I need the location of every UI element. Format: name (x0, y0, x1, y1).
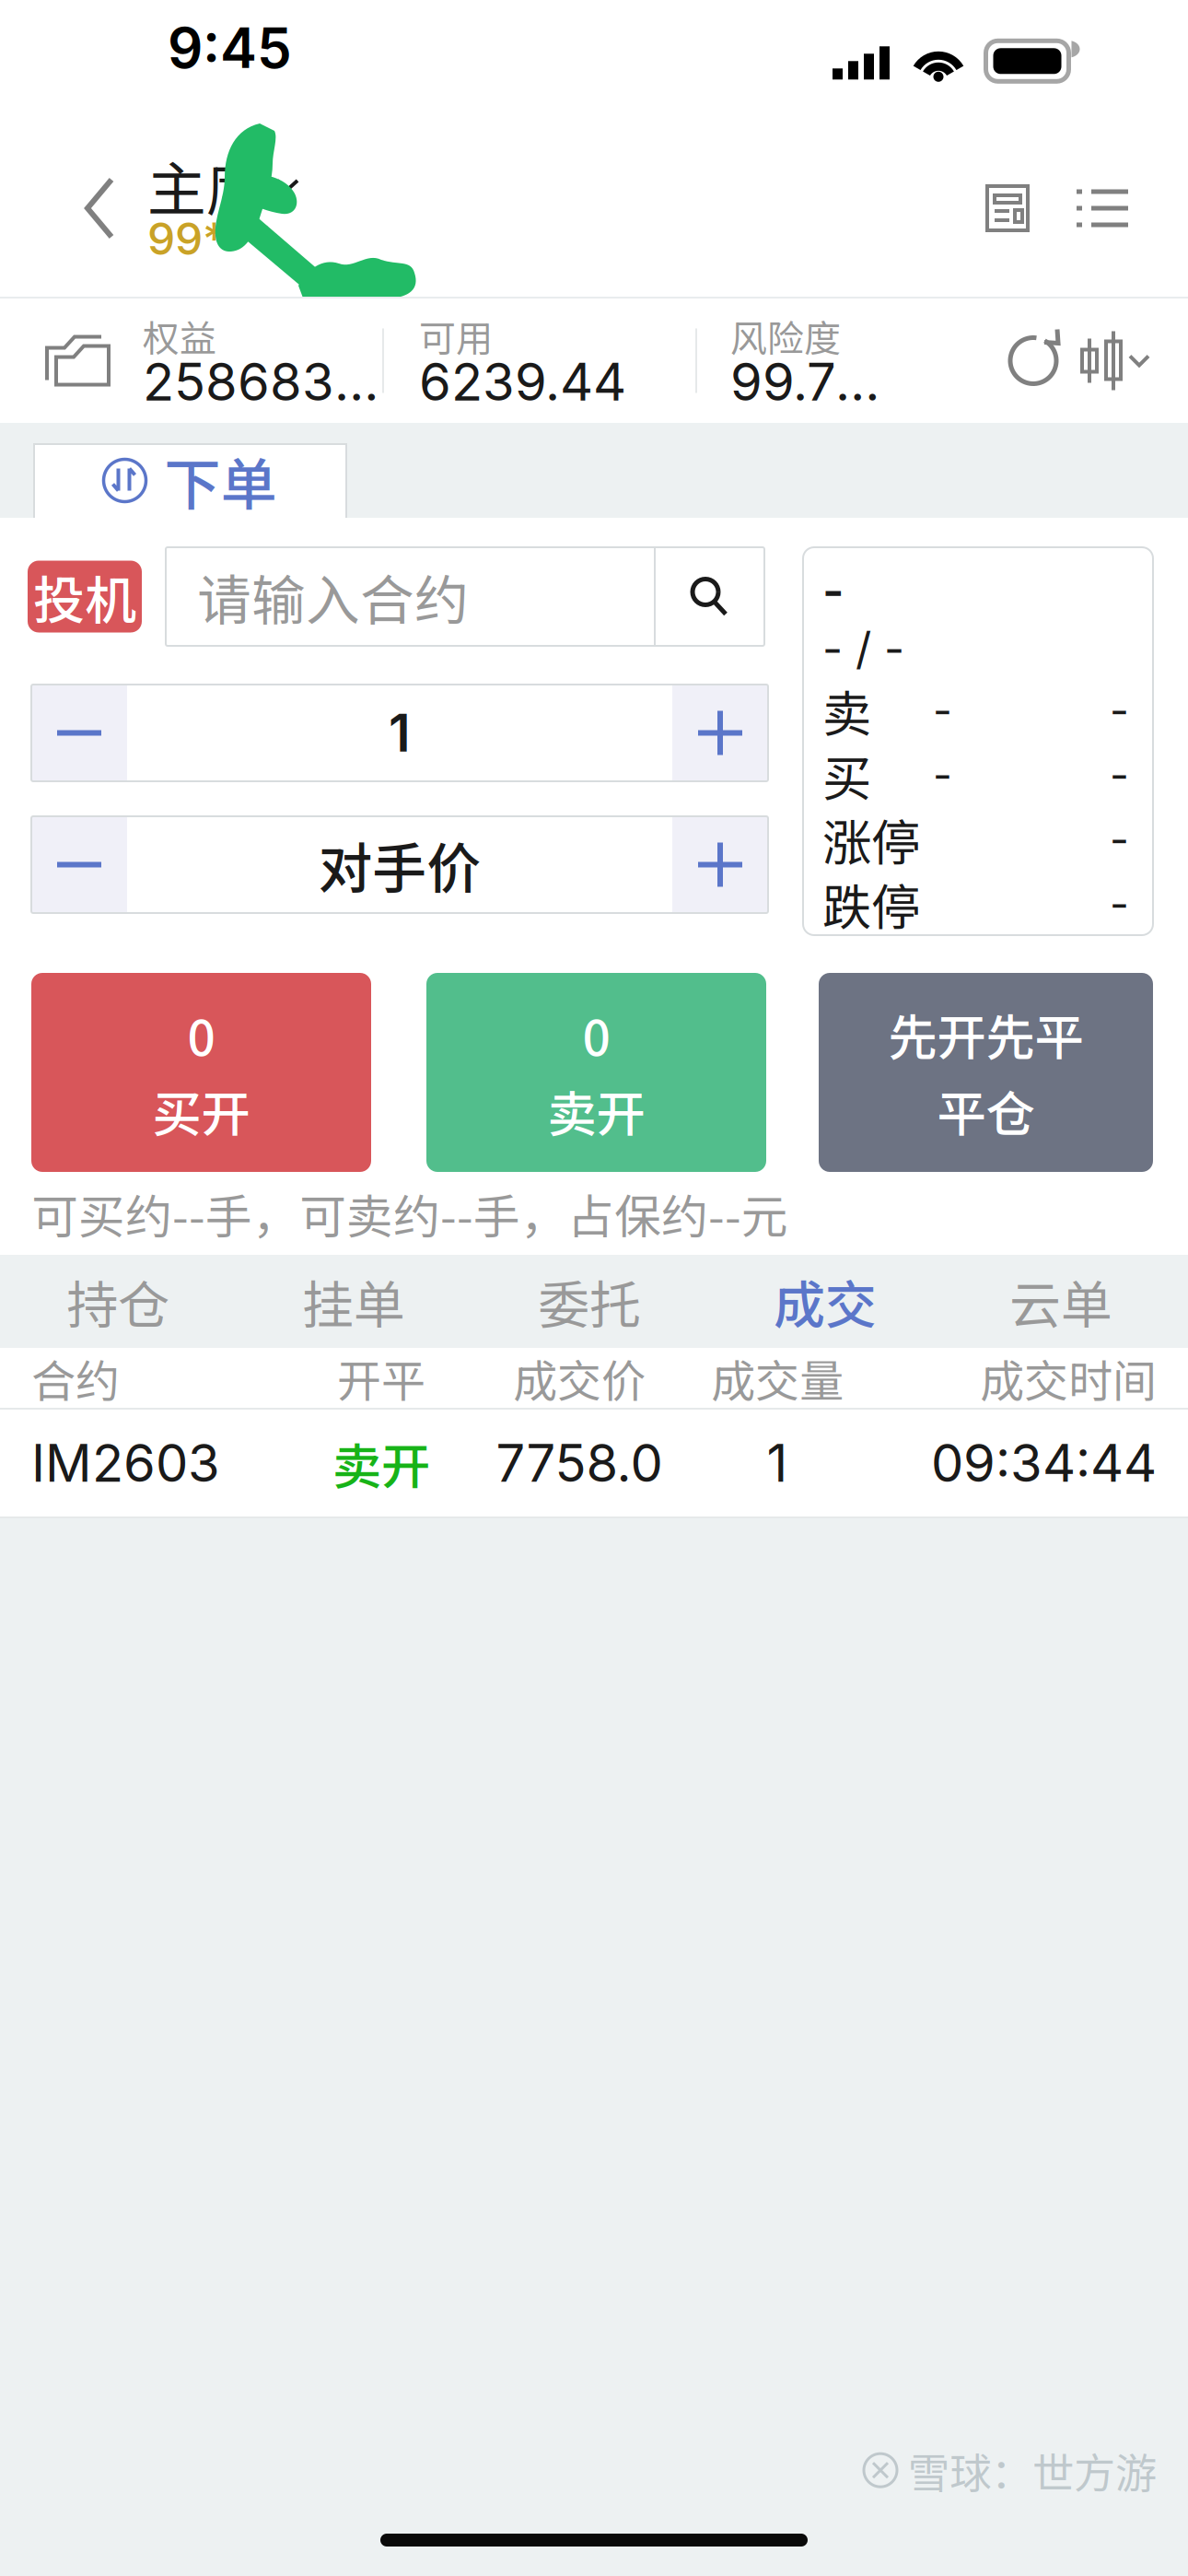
staticText: 对手价 (318, 825, 481, 904)
button[interactable]: 投机 (28, 561, 142, 632)
button[interactable]: Search (656, 547, 763, 646)
staticText: 成交 (774, 1264, 877, 1339)
staticText: 成交时间 (980, 1346, 1157, 1410)
staticText: 涨停 (822, 804, 920, 875)
button[interactable]: Decrease (31, 816, 127, 913)
button[interactable]: Increase (672, 685, 768, 781)
staticText: - (1110, 814, 1129, 865)
staticText: 99*** (147, 212, 272, 265)
button[interactable]: 0 (31, 973, 371, 1172)
staticText: 平仓 (937, 1075, 1035, 1146)
button[interactable]: 挂单 (236, 1255, 472, 1348)
staticText: 雪球：世方游 (908, 2440, 1157, 2500)
button[interactable]: 主席 (142, 144, 300, 273)
staticText: 99.76% (730, 351, 905, 413)
button[interactable]: 持仓 (0, 1255, 236, 1348)
button[interactable]: Reports (961, 158, 1054, 259)
button[interactable]: IM2603 (0, 1410, 1188, 1516)
staticText: 买开 (152, 1075, 250, 1146)
staticText: 风险度 (730, 309, 841, 362)
staticText: 1 (767, 1432, 788, 1494)
button[interactable]: 委托 (472, 1255, 707, 1348)
staticText: 可用 (419, 309, 493, 362)
staticText: - (1110, 685, 1129, 736)
button[interactable]: Decrease (31, 685, 127, 781)
staticText: 卖开 (332, 1427, 430, 1499)
staticText: 9:45 (168, 14, 292, 81)
staticText: 0 (582, 999, 610, 1070)
button[interactable]: 成交 (707, 1255, 943, 1348)
staticText: 挂单 (302, 1264, 405, 1339)
staticText: 开平 (337, 1346, 425, 1410)
staticText: 卖 (822, 675, 871, 746)
staticText: 卖开 (547, 1075, 645, 1146)
button[interactable]: Back (57, 158, 142, 259)
staticText: 2586839.44 (143, 351, 382, 413)
staticText: 成交量 (711, 1346, 844, 1410)
staticText: 持仓 (66, 1264, 169, 1339)
staticText: 可买约--手，可卖约--手，占保约--元 (31, 1180, 788, 1247)
staticText: 1 (389, 702, 411, 764)
staticText: 主席 (147, 143, 265, 228)
staticText: 下单 (164, 440, 277, 521)
button[interactable]: Chart (1072, 310, 1157, 411)
staticText: - (822, 562, 844, 619)
staticText: 请输入合约 (197, 557, 469, 636)
button[interactable]: 先开先平 (819, 973, 1153, 1172)
staticText: 委托 (538, 1264, 641, 1339)
staticText: - (1110, 750, 1129, 800)
staticText: - (933, 750, 952, 800)
staticText: 投机 (33, 559, 136, 634)
staticText: 买 (822, 739, 871, 810)
button[interactable]: Menu (1054, 158, 1151, 259)
button[interactable]: Refresh (998, 310, 1072, 411)
button[interactable]: 云单 (943, 1255, 1179, 1348)
staticText: 合约 (31, 1346, 120, 1410)
button[interactable]: 0 (426, 973, 766, 1172)
staticText: 6239.44 (419, 351, 626, 413)
staticText: 7758.0 (496, 1432, 663, 1494)
staticText: 0 (187, 999, 215, 1070)
staticText: - / - (822, 622, 904, 675)
staticText: IM2603 (31, 1432, 220, 1494)
staticText: 先开先平 (888, 999, 1083, 1070)
staticText: 跌停 (822, 868, 920, 939)
staticText: - (933, 685, 952, 736)
staticText: - (1110, 879, 1129, 929)
button[interactable]: Increase (672, 816, 768, 913)
button[interactable]: 下单 (33, 443, 347, 518)
staticText: 云单 (1009, 1264, 1112, 1339)
staticText: 09:34:44 (931, 1432, 1157, 1494)
staticText: 成交价 (513, 1346, 646, 1410)
staticText: 权益 (143, 309, 216, 362)
